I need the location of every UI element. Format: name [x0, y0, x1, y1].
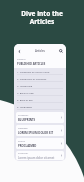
button[interactable]: 3. Unlearning — [14, 82, 66, 89]
staticText: 3. Unlearning — [17, 84, 33, 87]
staticText: STATUS — [18, 140, 26, 143]
staticText: PROCLAIMED — [18, 144, 37, 148]
staticText: Lorem ipsum dolor sit amet — [18, 156, 55, 160]
staticText: 1. Casualties of Church Circle — [17, 70, 50, 73]
staticText: LOREM IPSUM DOLOR SIT — [18, 131, 54, 135]
button[interactable]: 1. Casualties of Church Circle — [14, 68, 66, 75]
staticText: 2. Supremacy of Character — [17, 77, 47, 80]
staticText: 4. Back to Wag — [17, 91, 34, 94]
button[interactable]: Search — [58, 48, 64, 54]
staticText: 6. Languages — [17, 105, 32, 108]
staticText: Dive into the Articles — [21, 9, 63, 26]
staticText: CURRENT — [17, 58, 26, 61]
button[interactable]: CATEGORY — [16, 112, 64, 123]
staticText: Articles — [35, 49, 45, 53]
button[interactable]: ORDERED — [16, 125, 64, 136]
button[interactable]: 5. Blink of Eye — [14, 96, 66, 103]
staticText: 5. Blink of Eye — [17, 98, 33, 101]
button[interactable]: 2. Supremacy of Character — [14, 75, 66, 82]
staticText: ORDERED — [18, 127, 28, 130]
staticText: SUMMARY — [18, 152, 29, 155]
button[interactable]: 4. Back to Wag — [14, 89, 66, 96]
staticText: BLUEPRINTS — [18, 118, 36, 122]
button[interactable]: STATUS — [16, 138, 64, 149]
button[interactable]: 6. Languages — [14, 103, 66, 110]
staticText: CATEGORY — [18, 114, 29, 117]
button[interactable]: Back — [16, 48, 22, 54]
staticText: PUBLISHED ARTICLES — [17, 62, 46, 66]
button[interactable]: SUMMARY — [16, 151, 64, 160]
